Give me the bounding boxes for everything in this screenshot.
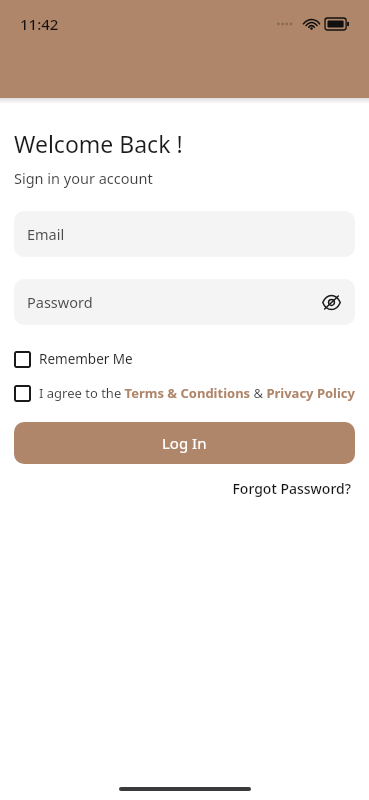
button[interactable]: Password	[14, 279, 355, 325]
staticText: Forgot Password?	[232, 479, 351, 498]
staticText: Welcome Back !	[14, 128, 183, 159]
button[interactable]: Log In	[14, 422, 355, 464]
staticText: 11:42	[20, 14, 59, 34]
button[interactable]: Email	[14, 211, 355, 257]
button[interactable]: I agree to the Terms & Conditions & Priv…	[14, 384, 355, 402]
staticText: Remember Me	[39, 350, 133, 368]
staticText: Email	[27, 224, 65, 244]
staticText: I agree to the Terms & Conditions & Priv…	[39, 384, 355, 402]
button[interactable]: Forgot Password?	[228, 476, 355, 501]
staticText: Sign in your account	[14, 168, 153, 188]
staticText: Log In	[162, 433, 207, 453]
button[interactable]: Remember Me	[14, 347, 355, 371]
staticText: Password	[27, 292, 93, 312]
button[interactable]: Show password	[315, 286, 347, 318]
